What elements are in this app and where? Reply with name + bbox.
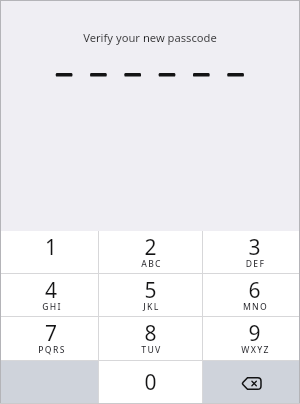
button[interactable]: 6 bbox=[203, 274, 300, 316]
staticText: ABC bbox=[100, 258, 203, 270]
staticText: DEF bbox=[207, 258, 300, 270]
staticText: GHI bbox=[3, 301, 101, 313]
button[interactable]: 3 bbox=[203, 231, 300, 273]
button[interactable]: 2 bbox=[99, 231, 202, 273]
staticText: PQRS bbox=[3, 344, 101, 356]
staticText: MNO bbox=[207, 301, 300, 313]
staticText: Verify your new passcode bbox=[0, 30, 300, 45]
button[interactable]: 1 bbox=[0, 231, 98, 273]
staticText: 1 bbox=[2, 233, 100, 262]
staticText: 2 bbox=[99, 233, 202, 262]
staticText: JKL bbox=[100, 301, 203, 313]
button[interactable]: 5 bbox=[99, 274, 202, 316]
staticText: 4 bbox=[2, 276, 100, 305]
staticText: 0 bbox=[99, 368, 202, 397]
staticText: 3 bbox=[206, 233, 300, 262]
staticText: 9 bbox=[206, 319, 300, 348]
button[interactable]: 4 bbox=[0, 274, 98, 316]
button[interactable]: 8 bbox=[99, 317, 202, 360]
staticText: 8 bbox=[99, 319, 202, 348]
button[interactable]: 0 bbox=[99, 361, 202, 404]
staticText: 6 bbox=[206, 276, 300, 305]
staticText: 5 bbox=[99, 276, 202, 305]
staticText: TUV bbox=[100, 344, 203, 356]
staticText: WXYZ bbox=[207, 344, 300, 356]
button[interactable]: Backspace bbox=[203, 361, 300, 404]
button[interactable]: Blank key bbox=[0, 361, 98, 404]
button[interactable]: 9 bbox=[203, 317, 300, 360]
staticText: 7 bbox=[2, 319, 100, 348]
button[interactable]: 7 bbox=[0, 317, 98, 360]
